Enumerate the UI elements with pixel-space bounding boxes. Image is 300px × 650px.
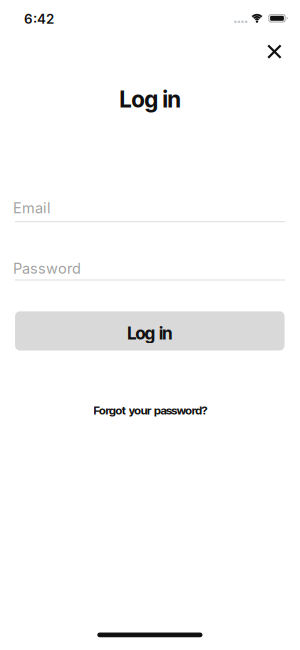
staticText: 6:42	[24, 11, 54, 27]
staticText: password?	[154, 403, 208, 417]
staticText: Log in	[119, 86, 180, 113]
staticText: in	[159, 323, 172, 344]
staticText: Forgot	[94, 403, 126, 417]
button[interactable]: Close	[256, 34, 292, 70]
button[interactable]: Log	[15, 311, 285, 350]
staticText: Email	[13, 199, 51, 217]
button[interactable]: Forgot	[94, 403, 208, 417]
staticText: Log	[127, 323, 155, 344]
staticText: Password	[13, 260, 81, 277]
staticText: your	[129, 403, 151, 417]
